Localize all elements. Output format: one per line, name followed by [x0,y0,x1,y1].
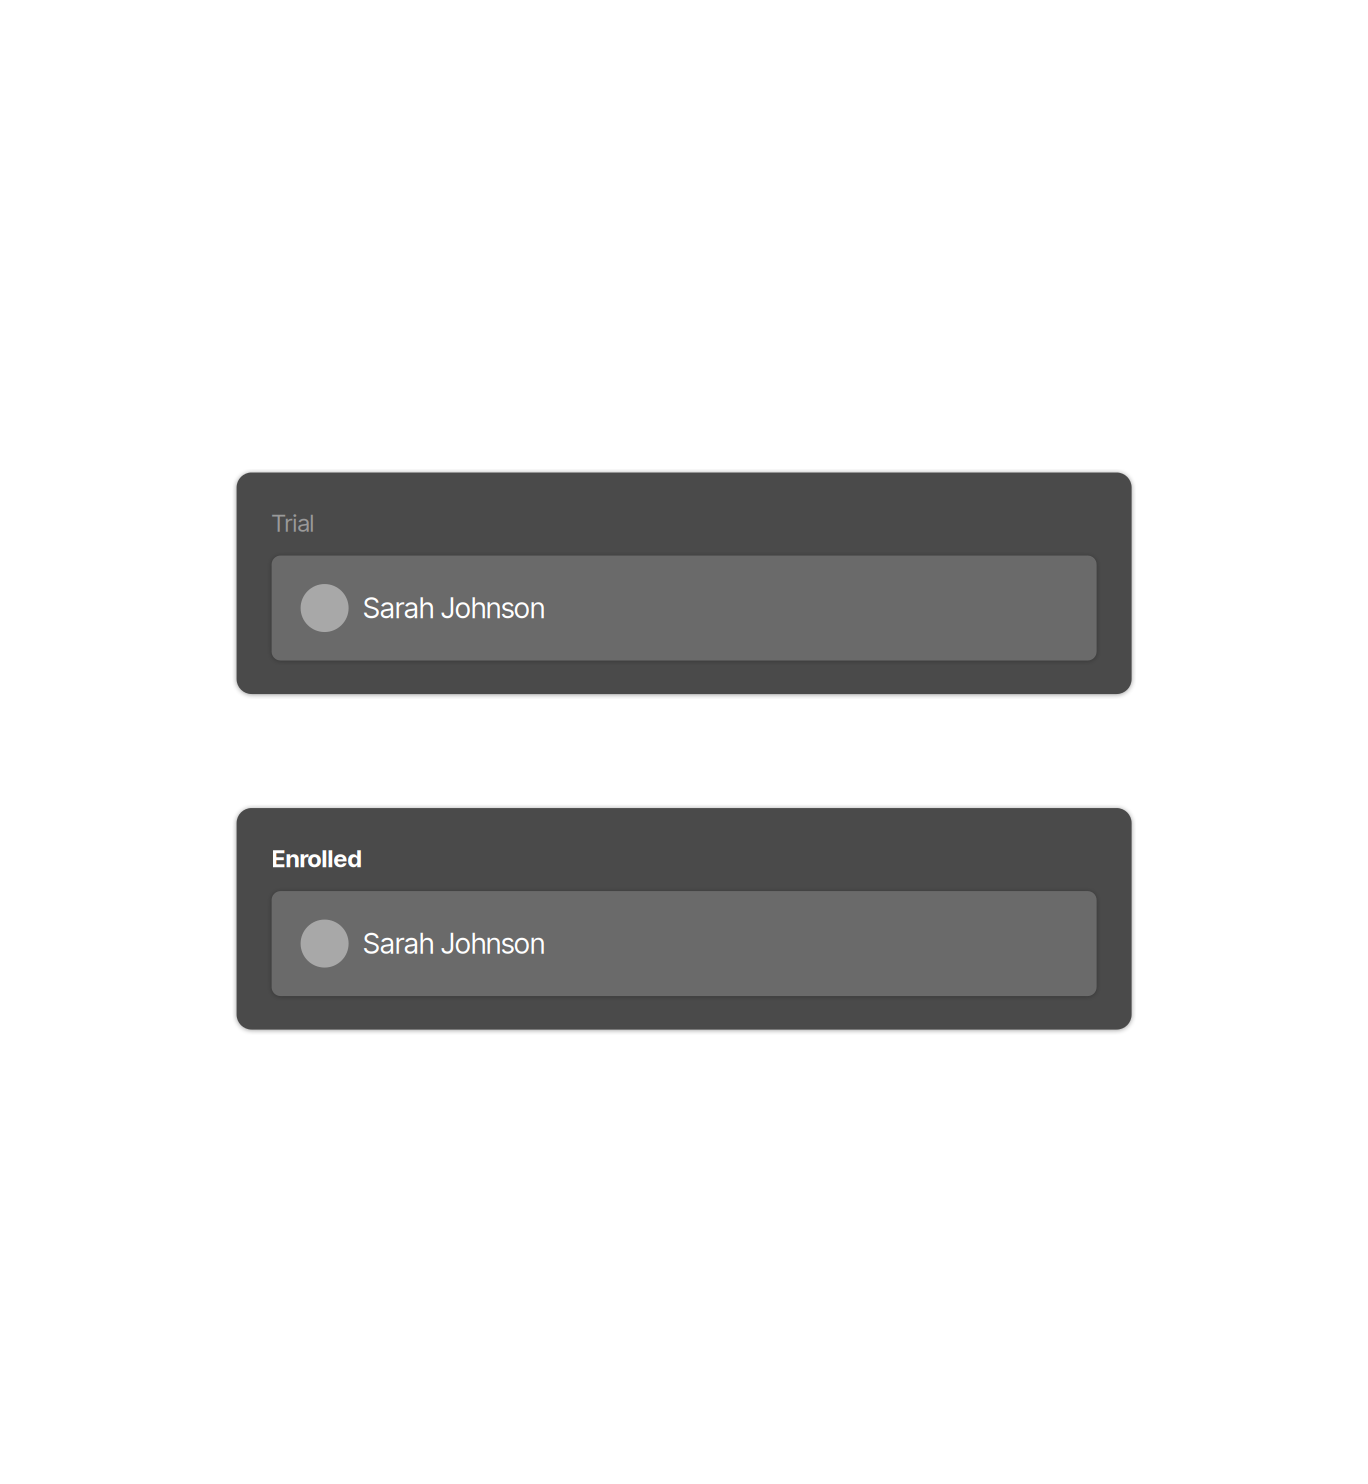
staticText: Sarah Johnson [363,926,545,961]
staticText: Sarah Johnson [363,591,545,625]
staticText: Enrolled [272,844,362,873]
button[interactable]: Sarah Johnson [272,891,1097,996]
button[interactable]: Sarah Johnson [272,555,1097,660]
staticText: Trial [272,508,315,537]
